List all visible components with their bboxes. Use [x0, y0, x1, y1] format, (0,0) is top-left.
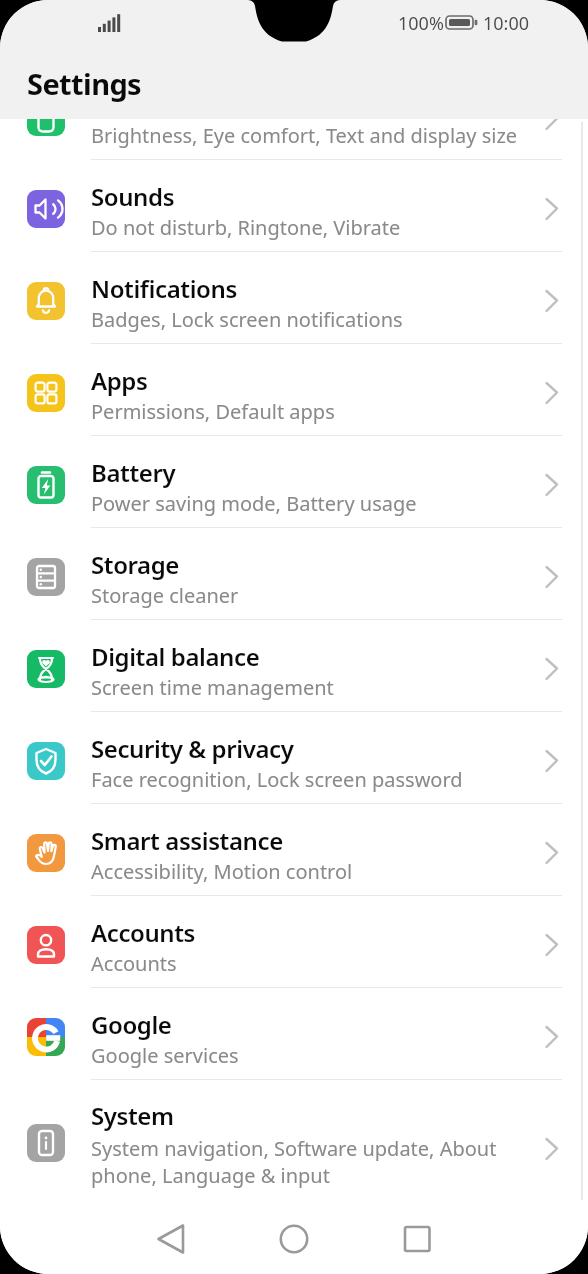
staticText: System — [91, 1099, 174, 1132]
button[interactable]: Accounts — [0, 896, 588, 988]
staticText: Google services — [91, 1042, 239, 1069]
button[interactable]: Digital balance — [0, 620, 588, 712]
button[interactable]: Sounds — [0, 160, 588, 252]
staticText: Apps — [91, 364, 148, 397]
staticText: Sounds — [91, 180, 175, 213]
button[interactable]: Security & privacy — [0, 712, 588, 804]
staticText: Face recognition, Lock screen password — [91, 766, 463, 793]
button[interactable] — [268, 1213, 320, 1265]
button[interactable] — [391, 1213, 443, 1265]
staticText: 100% — [398, 11, 444, 36]
staticText: Screen time management — [91, 674, 334, 701]
staticText: Settings — [27, 64, 142, 103]
button[interactable]: Notifications — [0, 252, 588, 344]
staticText: Accessibility, Motion control — [91, 858, 353, 885]
button[interactable]: Smart assistance — [0, 804, 588, 896]
staticText: Smart assistance — [91, 824, 283, 857]
staticText: Brightness, Eye comfort, Text and displa… — [91, 122, 518, 149]
button[interactable]: Apps — [0, 344, 588, 436]
staticText: Google — [91, 1008, 172, 1041]
staticText: Security & privacy — [91, 732, 294, 765]
staticText: 10:00 — [483, 11, 530, 36]
staticText: Digital balance — [91, 640, 260, 673]
staticText: Accounts — [91, 916, 196, 949]
button[interactable]: Brightness, Eye comfort, Text and displa… — [0, 119, 588, 160]
staticText: Power saving mode, Battery usage — [91, 490, 417, 517]
staticText: Accounts — [91, 950, 177, 977]
staticText: Permissions, Default apps — [91, 398, 335, 425]
staticText: Notifications — [91, 272, 237, 305]
button[interactable]: Battery — [0, 436, 588, 528]
staticText: Storage — [91, 548, 179, 581]
staticText: Battery — [91, 456, 176, 489]
staticText: Do not disturb, Ringtone, Vibrate — [91, 214, 401, 241]
button[interactable] — [145, 1213, 197, 1265]
staticText: System navigation, Software update, Abou… — [91, 1135, 497, 1189]
button[interactable]: Storage — [0, 528, 588, 620]
button[interactable]: Google — [0, 988, 588, 1080]
staticText: Badges, Lock screen notifications — [91, 306, 403, 333]
staticText: Storage cleaner — [91, 582, 239, 609]
button[interactable]: System — [0, 1080, 588, 1204]
